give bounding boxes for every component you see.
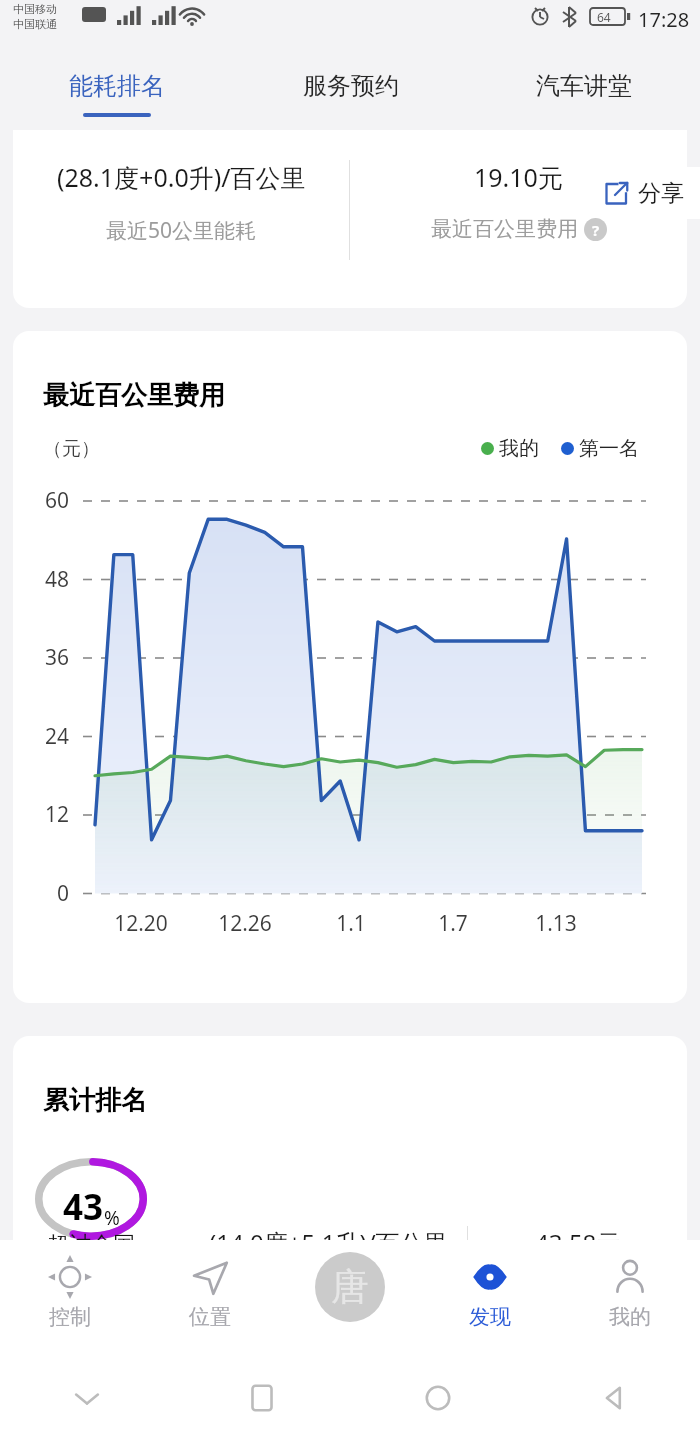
button[interactable]: 能耗排名 bbox=[0, 47, 234, 130]
staticText: 分享 bbox=[638, 179, 684, 208]
other: 分享 bbox=[604, 181, 629, 206]
button[interactable]: (28.1度+0.0升)/百公里 bbox=[13, 130, 687, 308]
staticText: 超讨全国 bbox=[47, 1231, 135, 1240]
staticText: 中国移动 bbox=[13, 2, 57, 16]
staticText: ? bbox=[592, 220, 600, 240]
button[interactable]: Back bbox=[596, 1381, 630, 1415]
staticText: % bbox=[104, 1205, 120, 1231]
staticText: 第一名 bbox=[579, 436, 639, 461]
staticText: 36 bbox=[13, 643, 69, 672]
button[interactable]: Recents bbox=[245, 1381, 279, 1415]
button[interactable]: 分享 bbox=[588, 167, 700, 219]
button[interactable]: 发现 bbox=[420, 1240, 560, 1358]
staticText: 19.10元 bbox=[474, 160, 563, 194]
staticText: 12.26 bbox=[190, 909, 300, 938]
staticText: 最近百公里费用 bbox=[43, 379, 225, 412]
staticText: 43 bbox=[63, 1183, 104, 1231]
staticText: 64 bbox=[597, 9, 611, 25]
staticText: (28.1度+0.0升)/百公里 bbox=[57, 160, 306, 194]
staticText: 48 bbox=[13, 565, 69, 594]
staticText: 中国联通 bbox=[13, 17, 57, 31]
staticText: 0 bbox=[13, 879, 69, 908]
staticText: 43.58元 bbox=[535, 1226, 621, 1240]
staticText: 1.13 bbox=[501, 909, 611, 938]
other: 我的 bbox=[609, 1256, 651, 1298]
staticText: 服务预约 bbox=[303, 71, 399, 101]
staticText: 最近百公里费用 bbox=[431, 216, 578, 242]
other: 控制 bbox=[49, 1256, 91, 1298]
staticText: 位置 bbox=[189, 1304, 231, 1330]
button[interactable]: 汽车讲堂 bbox=[467, 47, 700, 130]
staticText: 1.1 bbox=[296, 909, 406, 938]
staticText: （元） bbox=[43, 437, 100, 461]
button[interactable]: 累计排名 bbox=[13, 1036, 687, 1240]
staticText: 累计排名 bbox=[43, 1084, 147, 1117]
staticText: 能耗排名 bbox=[69, 71, 165, 101]
staticText: 唐 bbox=[331, 1263, 369, 1311]
staticText: 最近50公里能耗 bbox=[106, 216, 257, 245]
button[interactable]: 我的 bbox=[560, 1240, 700, 1358]
button[interactable]: 位置 bbox=[140, 1240, 280, 1358]
staticText: 17:28 bbox=[638, 6, 690, 33]
staticText: 12.20 bbox=[86, 909, 196, 938]
staticText: 我的 bbox=[609, 1304, 651, 1330]
staticText: 控制 bbox=[49, 1304, 91, 1330]
staticText: 60 bbox=[13, 486, 69, 515]
staticText: 12 bbox=[13, 800, 69, 829]
button[interactable]: 服务预约 bbox=[234, 47, 467, 130]
other: 发现 bbox=[469, 1256, 511, 1298]
staticText: 汽车讲堂 bbox=[536, 71, 632, 101]
button[interactable]: 控制 bbox=[0, 1240, 140, 1358]
staticText: 1.7 bbox=[398, 909, 508, 938]
button[interactable]: 唐 bbox=[280, 1240, 420, 1358]
button[interactable]: Hide bbox=[70, 1381, 104, 1415]
staticText: 24 bbox=[13, 722, 69, 751]
staticText: 我的 bbox=[499, 436, 539, 461]
button[interactable]: Home bbox=[421, 1381, 455, 1415]
staticText: 发现 bbox=[469, 1304, 511, 1330]
staticText: (14.0度+5.1升)/百公里 bbox=[209, 1226, 448, 1240]
other: 位置 bbox=[189, 1256, 231, 1298]
